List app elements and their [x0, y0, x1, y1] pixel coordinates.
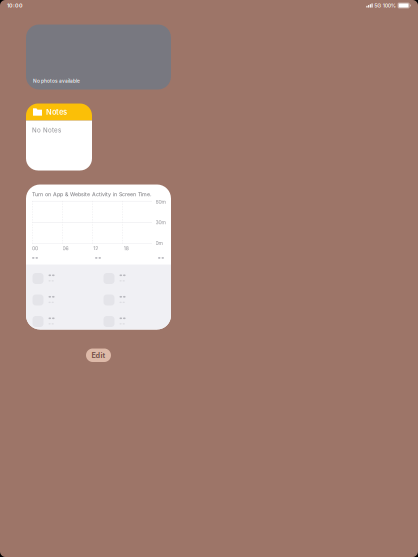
- staticText: 10:00: [7, 2, 23, 9]
- staticText: 5G: [374, 2, 381, 9]
- button[interactable]: Screen Time widget: [26, 184, 171, 329]
- staticText: 12: [93, 245, 98, 252]
- staticText: 06: [63, 245, 69, 252]
- staticText: 60m: [155, 199, 165, 205]
- staticText: 18: [124, 245, 129, 252]
- staticText: 0m: [155, 240, 162, 246]
- button[interactable]: Edit: [86, 348, 111, 362]
- staticText: No Notes: [32, 126, 61, 134]
- staticText: Turn on App & Website Activity in Screen…: [32, 191, 152, 197]
- staticText: Edit: [91, 351, 105, 360]
- button[interactable]: Photos widget: [26, 24, 171, 89]
- staticText: 100%: [383, 2, 396, 9]
- staticText: 30m: [155, 219, 165, 225]
- staticText: No photos available: [33, 78, 80, 84]
- staticText: 00: [32, 245, 38, 252]
- button[interactable]: Notes widget: [26, 103, 92, 170]
- staticText: Notes: [46, 108, 67, 116]
